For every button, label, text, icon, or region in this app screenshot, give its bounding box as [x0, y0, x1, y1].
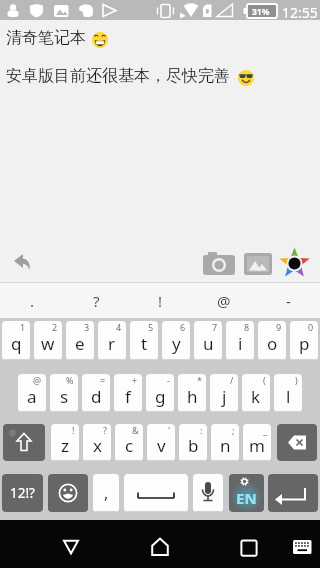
staticText: d	[91, 385, 102, 408]
staticText: a	[27, 385, 37, 408]
button[interactable]: 2	[34, 321, 62, 360]
staticText: !	[158, 291, 163, 311]
staticText: 3	[84, 321, 90, 333]
button[interactable]: 5	[130, 321, 158, 360]
button[interactable]	[278, 247, 311, 280]
button[interactable]: !	[51, 424, 79, 461]
button[interactable]: 1	[2, 321, 30, 360]
staticText: v	[157, 434, 166, 457]
staticText: 2	[52, 321, 58, 333]
button[interactable]: ?	[83, 424, 111, 461]
button[interactable]: 6	[162, 321, 190, 360]
staticText: 9	[276, 321, 282, 333]
button[interactable]: &	[115, 424, 143, 461]
staticText: p	[299, 332, 310, 355]
staticText: ;	[232, 424, 235, 436]
button[interactable]	[229, 527, 269, 567]
button[interactable]: +	[114, 374, 142, 412]
button[interactable]	[124, 474, 188, 512]
button[interactable]: -	[146, 374, 174, 412]
button[interactable]: ?	[64, 283, 128, 318]
button[interactable]: 9	[258, 321, 286, 360]
staticText: f	[125, 385, 131, 408]
staticText: t	[141, 332, 148, 355]
staticText: n	[220, 434, 231, 457]
staticText: z	[61, 434, 69, 457]
staticText: @	[33, 374, 42, 386]
button[interactable]: =	[82, 374, 110, 412]
button[interactable]: @	[18, 374, 46, 412]
button[interactable]	[140, 527, 180, 567]
staticText: k	[251, 385, 261, 408]
button[interactable]	[203, 252, 237, 276]
staticText: !	[72, 424, 75, 436]
staticText: 1	[20, 321, 26, 333]
button[interactable]: 7	[194, 321, 222, 360]
staticText: b	[188, 434, 199, 457]
staticText: ?	[93, 291, 100, 311]
staticText: i	[238, 332, 243, 355]
staticText: =	[100, 374, 106, 386]
staticText: u	[203, 332, 214, 355]
staticText: 4	[116, 321, 122, 333]
button[interactable]: EN	[229, 474, 264, 512]
staticText: .	[30, 291, 35, 311]
button[interactable]	[282, 527, 320, 567]
staticText: _	[263, 424, 267, 436]
staticText: 5	[148, 321, 154, 333]
staticText: o	[267, 332, 278, 355]
button[interactable]: :	[179, 424, 207, 461]
button[interactable]: .	[0, 283, 64, 318]
button[interactable]: *	[178, 374, 206, 412]
staticText: g	[155, 385, 166, 408]
staticText: &	[132, 424, 139, 436]
button[interactable]	[3, 424, 45, 461]
staticText: *	[197, 374, 202, 386]
button[interactable]: %	[50, 374, 78, 412]
button[interactable]	[193, 474, 223, 512]
staticText: 6	[180, 321, 186, 333]
button[interactable]: 8	[226, 321, 254, 360]
staticText: h	[187, 385, 198, 408]
button[interactable]	[244, 253, 272, 275]
button[interactable]: 12!?	[2, 474, 43, 512]
staticText: (	[263, 374, 266, 386]
button[interactable]: @	[192, 283, 256, 318]
button[interactable]: -	[256, 283, 320, 318]
button[interactable]	[268, 474, 318, 512]
staticText: 7	[212, 321, 218, 333]
staticText: -	[286, 291, 291, 311]
staticText: 31%	[252, 6, 270, 18]
button[interactable]	[51, 527, 91, 567]
staticText: 安卓版目前还很基本，尽快完善	[6, 66, 230, 86]
staticText: m	[249, 434, 265, 457]
staticText: 12!?	[10, 484, 35, 502]
staticText: x	[93, 434, 102, 457]
staticText: j	[222, 385, 227, 408]
button[interactable]	[277, 424, 317, 461]
staticText: s	[60, 385, 69, 408]
button[interactable]	[48, 474, 88, 512]
button[interactable]: _	[243, 424, 271, 461]
button[interactable]: !	[128, 283, 192, 318]
button[interactable]	[6, 250, 38, 282]
staticText: ,	[104, 482, 109, 504]
staticText: :	[200, 424, 203, 436]
button[interactable]: /	[210, 374, 238, 412]
button[interactable]: ,	[93, 474, 119, 512]
staticText: y	[172, 332, 181, 355]
button[interactable]: 0	[290, 321, 318, 360]
staticText: /	[230, 374, 234, 386]
staticText: ?	[103, 424, 107, 436]
staticText: 清奇笔记本	[6, 28, 86, 48]
staticText: c	[125, 434, 134, 457]
staticText: e	[75, 332, 85, 355]
button[interactable]: 4	[98, 321, 126, 360]
button[interactable]: '	[147, 424, 175, 461]
button[interactable]: ;	[211, 424, 239, 461]
button[interactable]: )	[274, 374, 302, 412]
staticText: q	[11, 332, 22, 355]
staticText: -	[167, 374, 170, 386]
button[interactable]: 3	[66, 321, 94, 360]
button[interactable]: (	[242, 374, 270, 412]
